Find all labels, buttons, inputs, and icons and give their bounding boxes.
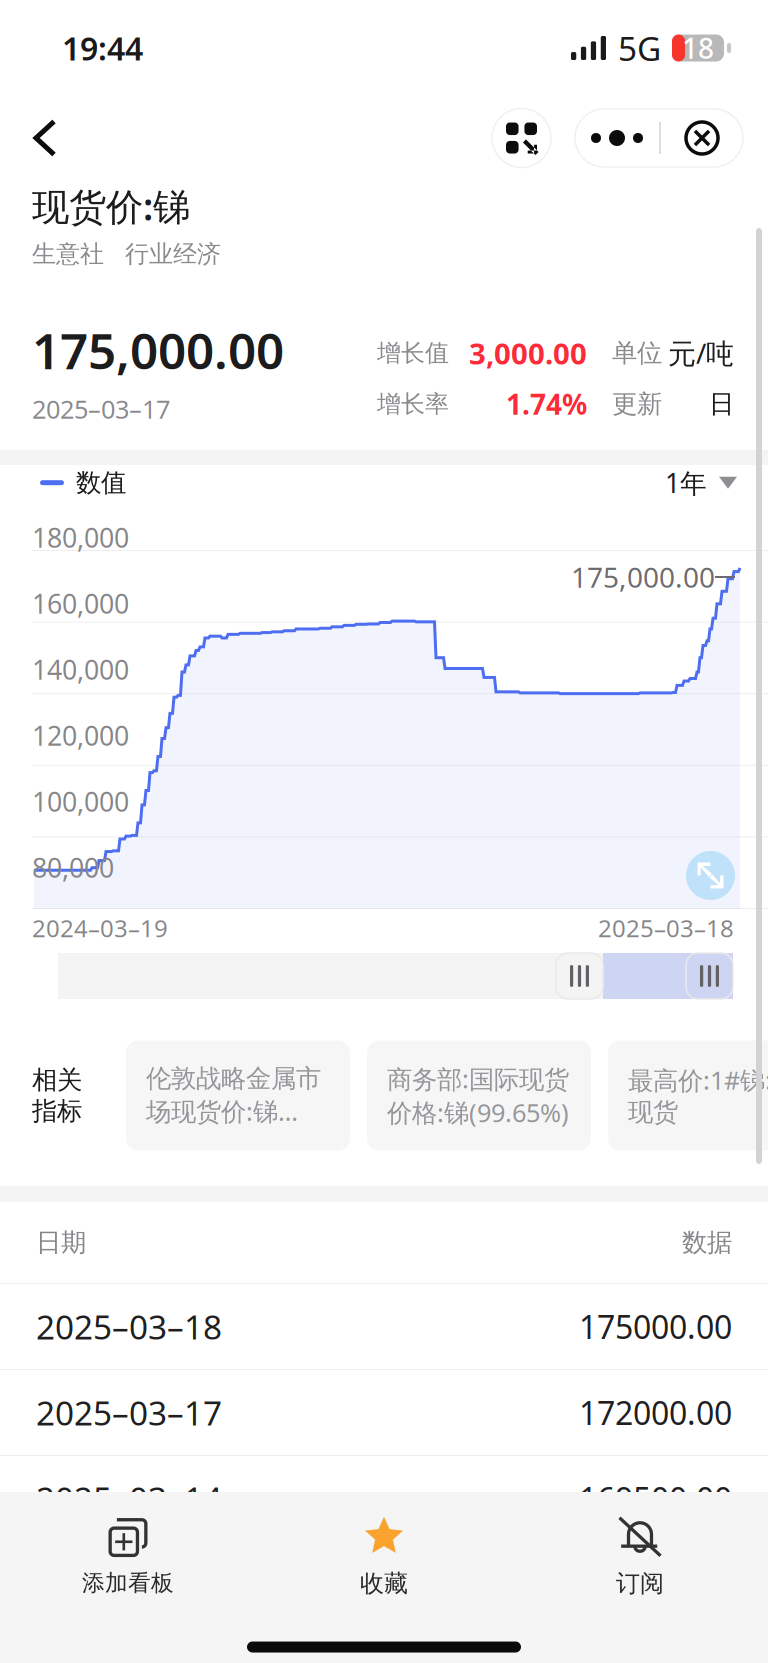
staticText: 元/吨 xyxy=(668,334,734,372)
staticText: 商务部:国际现货 价格:锑(99.65%) xyxy=(387,1062,569,1129)
staticText: 日期 xyxy=(36,1227,86,1258)
staticText: 180,000 xyxy=(32,520,129,555)
staticText: 日 xyxy=(709,388,734,419)
staticText: 2025–03–17 xyxy=(32,392,170,426)
button[interactable]: More options and close xyxy=(575,109,743,167)
staticText: 相关 指标 xyxy=(32,1064,82,1127)
staticText: 18 xyxy=(682,29,714,67)
button[interactable]: 最高价:1#锑:… 现货 xyxy=(608,1040,768,1150)
button[interactable]: 2025–03–17 xyxy=(0,1370,768,1455)
staticText: 140,000 xyxy=(32,652,129,687)
staticText: 80,000 xyxy=(32,850,114,885)
staticText: 数值 xyxy=(76,467,126,498)
button[interactable]: 订阅 xyxy=(512,1507,768,1607)
staticText: 伦敦战略金属市 场现货价:锑… xyxy=(146,1063,321,1128)
staticText: 1.74% xyxy=(506,385,587,423)
staticText: 生意社 行业经济 xyxy=(32,239,221,269)
staticText: 更新 xyxy=(612,388,662,419)
staticText: 收藏 xyxy=(360,1569,408,1598)
staticText: 175,000.00 xyxy=(571,558,715,596)
button[interactable]: 收藏 xyxy=(256,1507,512,1607)
staticText: 订阅 xyxy=(616,1569,664,1598)
staticText: 单位 xyxy=(612,337,662,368)
button[interactable]: Back xyxy=(0,97,80,178)
button[interactable]: 2025–03–14 xyxy=(0,1456,768,1541)
staticText: 172000.00 xyxy=(579,1391,732,1434)
staticText: 1年 xyxy=(665,465,707,500)
staticText: 100,000 xyxy=(32,784,129,819)
button[interactable]: 商务部:国际现货 价格:锑(99.65%) xyxy=(367,1040,591,1150)
staticText: 160,000 xyxy=(32,586,129,621)
staticText: 169500.00 xyxy=(579,1477,732,1520)
staticText: 175000.00 xyxy=(579,1305,732,1348)
button[interactable]: 伦敦战略金属市 场现货价:锑… xyxy=(126,1040,350,1150)
button[interactable]: 添加看板 xyxy=(0,1507,256,1607)
staticText: 最高价:1#锑:… 现货 xyxy=(628,1063,768,1128)
staticText: 2025–03–18 xyxy=(598,912,734,944)
button[interactable]: 1年 xyxy=(665,465,737,500)
staticText: 2024–03–19 xyxy=(32,912,168,944)
staticText: 19:44 xyxy=(62,27,143,69)
staticText: 添加看板 xyxy=(82,1569,174,1597)
staticText: 2025–03–14 xyxy=(36,1476,222,1521)
button[interactable]: 2025–03–18 xyxy=(0,1284,768,1369)
staticText: 175,000.00 xyxy=(32,317,284,383)
staticText: 2025–03–17 xyxy=(36,1390,222,1435)
staticText: 增长值 xyxy=(377,338,449,368)
button[interactable]: Expand chart xyxy=(686,851,735,900)
staticText: 120,000 xyxy=(32,718,129,753)
staticText: 增长率 xyxy=(377,389,449,419)
staticText: 2025–03–18 xyxy=(36,1304,222,1349)
staticText: 3,000.00 xyxy=(469,333,587,372)
button[interactable]: Mini program menu xyxy=(492,108,551,167)
staticText: 现货价:锑 xyxy=(32,181,190,231)
staticText: 数据 xyxy=(682,1227,732,1258)
staticText: 5G xyxy=(618,26,661,70)
